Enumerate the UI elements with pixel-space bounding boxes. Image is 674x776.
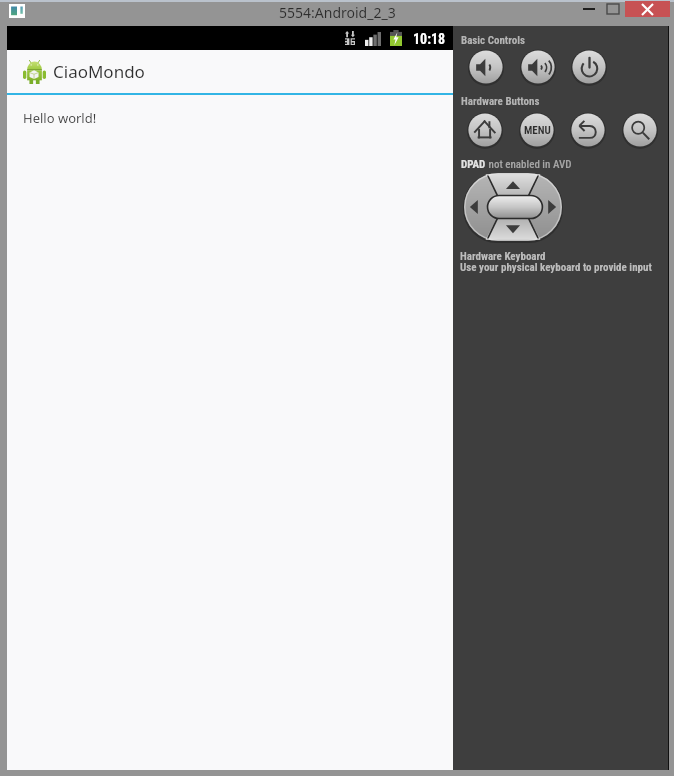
button[interactable]: Maximize	[601, 1, 625, 17]
button[interactable]: Minimize	[566, 1, 611, 17]
button[interactable]: Volume up	[520, 49, 556, 85]
staticText: Hello world!	[23, 109, 97, 127]
button[interactable]: MENU	[519, 112, 555, 148]
button[interactable]: Close	[625, 1, 670, 17]
staticText: 10:18	[413, 31, 446, 47]
button[interactable]: D-pad	[464, 173, 562, 241]
staticText: Hardware Keyboard	[460, 250, 546, 263]
button[interactable]: Back	[570, 112, 606, 148]
staticText: CiaoMondo	[53, 60, 145, 83]
staticText: not enabled in AVD	[486, 158, 572, 171]
staticText: MENU	[524, 124, 551, 137]
button[interactable]: Home	[467, 112, 503, 148]
staticText: Basic Controls	[461, 34, 525, 47]
button[interactable]: Power	[571, 49, 607, 85]
staticText: Use your physical keyboard to provide in…	[460, 261, 652, 274]
staticText: Hardware Buttons	[461, 95, 540, 108]
button[interactable]: Search	[622, 112, 658, 148]
button[interactable]: Volume down	[468, 49, 504, 85]
staticText: DPAD	[461, 158, 486, 171]
staticText: 5554:Android_2_3	[279, 3, 396, 22]
